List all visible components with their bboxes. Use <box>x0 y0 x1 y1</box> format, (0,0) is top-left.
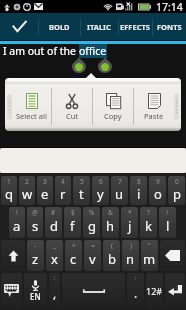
button[interactable]: 3 <box>37 176 53 205</box>
staticText: 17:14 <box>156 0 183 13</box>
staticText: / <box>166 208 169 217</box>
button[interactable]: : <box>127 273 144 308</box>
button[interactable]: 5 <box>73 176 90 205</box>
button[interactable]: Copy <box>93 82 133 131</box>
button[interactable]: Paste <box>134 82 174 131</box>
staticText: = <box>91 241 95 250</box>
button[interactable]: % <box>83 207 100 238</box>
staticText: . <box>134 285 138 301</box>
button[interactable]: 7 <box>111 176 128 205</box>
staticText: 12# <box>146 285 163 297</box>
button[interactable]: Enter <box>165 273 185 308</box>
staticText: # <box>51 208 56 217</box>
button[interactable]: Done <box>0 13 38 40</box>
staticText: Copy <box>104 111 122 121</box>
button[interactable]: @ <box>27 207 43 238</box>
staticText: h <box>106 217 115 235</box>
button[interactable]: Shift <box>1 240 25 271</box>
staticText: ; <box>54 274 56 282</box>
staticText: n <box>126 250 135 268</box>
button[interactable]: 1 <box>1 176 17 205</box>
button[interactable]: & <box>102 207 119 238</box>
button[interactable]: FONTS <box>152 13 186 40</box>
staticText: ) <box>130 241 132 250</box>
button[interactable]: Select all <box>12 82 51 131</box>
button[interactable]: 8 <box>130 176 147 205</box>
staticText: o <box>154 185 162 203</box>
button[interactable]: * <box>121 207 138 238</box>
button[interactable]: = <box>84 240 101 271</box>
button[interactable]: _ <box>46 240 63 271</box>
button[interactable]: BOLD <box>38 13 80 40</box>
staticText: Cut <box>66 111 79 121</box>
staticText: : <box>135 274 137 282</box>
staticText: k <box>145 217 152 235</box>
staticText: EFFECTS <box>120 22 150 32</box>
staticText: g <box>88 217 96 235</box>
staticText: 7 <box>118 177 122 186</box>
staticText: 0 <box>175 177 179 186</box>
staticText: q <box>5 185 13 203</box>
button[interactable]: / <box>159 207 176 238</box>
staticText: s <box>32 217 39 235</box>
staticText: e <box>41 185 49 203</box>
button[interactable]: EFFECTS <box>118 13 152 40</box>
button[interactable]: ( <box>103 240 120 271</box>
button[interactable]: Change keyboard <box>1 273 22 308</box>
staticText: j <box>128 217 132 235</box>
staticText: ITALIC <box>87 22 111 32</box>
button[interactable]: $ <box>64 207 81 238</box>
button[interactable]: Voice input, English <box>24 273 47 308</box>
staticText: , <box>53 285 57 301</box>
button[interactable]: - <box>27 240 44 271</box>
staticText: m <box>143 250 156 268</box>
button[interactable]: ; <box>49 273 60 308</box>
button[interactable]: 2 <box>19 176 35 205</box>
staticText: % <box>89 208 95 217</box>
button[interactable]: ITALIC <box>80 13 118 40</box>
button[interactable]: 9 <box>149 176 166 205</box>
button[interactable]: ! <box>9 207 25 238</box>
staticText: y <box>97 185 104 203</box>
staticText: FONTS <box>157 22 182 32</box>
staticText: d <box>50 217 58 235</box>
button[interactable]: 0 <box>168 176 185 205</box>
button[interactable]: 12# <box>146 273 163 308</box>
staticText: * <box>128 208 132 217</box>
staticText: l <box>166 217 170 235</box>
staticText: @ <box>32 208 38 217</box>
staticText: - <box>34 241 37 250</box>
staticText: w <box>22 185 33 203</box>
staticText: EN <box>30 291 41 302</box>
staticText: $ <box>71 208 75 217</box>
button[interactable]: ) <box>122 240 139 271</box>
staticText: u <box>115 185 124 203</box>
staticText: Paste <box>144 111 164 121</box>
button[interactable]: # <box>45 207 62 238</box>
staticText: v <box>89 250 96 268</box>
staticText: I am out of the <box>3 44 79 58</box>
button[interactable]: Backspace <box>160 240 185 271</box>
staticText: 4 <box>61 177 65 186</box>
button[interactable]: ? <box>140 207 157 238</box>
staticText: " <box>148 241 151 250</box>
button[interactable]: + <box>65 240 82 271</box>
button[interactable]: 6 <box>92 176 109 205</box>
button[interactable]: " <box>141 240 158 271</box>
staticText: z <box>32 250 39 268</box>
staticText: 2 <box>25 177 29 186</box>
staticText: + <box>72 241 76 250</box>
button[interactable]: Space <box>62 273 125 308</box>
button[interactable]: 4 <box>55 176 71 205</box>
button[interactable]: Cut <box>52 82 92 131</box>
staticText: _ <box>53 241 56 250</box>
staticText: & <box>108 208 113 217</box>
staticText: c <box>70 250 77 268</box>
staticText: ! <box>16 208 18 217</box>
staticText: r <box>60 185 66 203</box>
staticText: b <box>108 250 116 268</box>
staticText: 6 <box>99 177 103 186</box>
staticText: 1 <box>7 177 11 186</box>
staticText: 5 <box>80 177 84 186</box>
staticText: a <box>13 217 21 235</box>
